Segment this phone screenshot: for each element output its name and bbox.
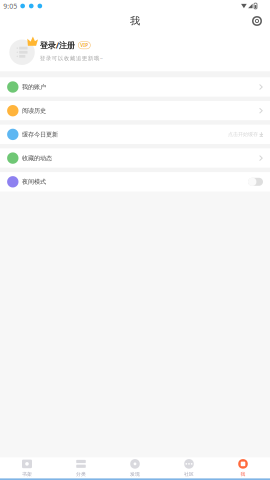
staticText: 登录/注册 bbox=[40, 40, 75, 51]
button[interactable]: 登录/注册 bbox=[0, 30, 270, 71]
staticText: 缓存今日更新 bbox=[22, 130, 58, 138]
staticText: 夜间模式 bbox=[22, 178, 46, 186]
staticText: 我的账户 bbox=[22, 83, 46, 91]
button[interactable]: 夜间模式 bbox=[0, 172, 270, 191]
button[interactable]: 收藏的动态 bbox=[0, 148, 270, 168]
staticText: 9:05 bbox=[3, 1, 17, 11]
staticText: VIP bbox=[80, 42, 88, 48]
staticText: 收藏的动态 bbox=[22, 154, 52, 162]
button[interactable]: 缓存今日更新 bbox=[0, 125, 270, 144]
button[interactable]: 书架 bbox=[0, 457, 54, 478]
staticText: 分类 bbox=[76, 471, 86, 477]
button[interactable]: 社区 bbox=[162, 457, 216, 478]
button[interactable]: Settings bbox=[248, 12, 265, 29]
staticText: 社区 bbox=[184, 471, 194, 477]
staticText: 发现 bbox=[130, 471, 140, 477]
staticText: 登录可以收藏追更新哦~ bbox=[40, 54, 103, 62]
staticText: 点击开始缓存 bbox=[228, 131, 258, 138]
staticText: 我 bbox=[240, 471, 245, 477]
staticText: 书架 bbox=[22, 471, 32, 477]
button[interactable]: 发现 bbox=[108, 457, 162, 478]
button[interactable]: 我的账户 bbox=[0, 77, 270, 97]
staticText: 我 bbox=[130, 15, 140, 27]
button[interactable]: 阅读历史 bbox=[0, 101, 270, 120]
button[interactable]: 我 bbox=[216, 457, 270, 478]
button[interactable]: 分类 bbox=[54, 457, 108, 478]
staticText: 阅读历史 bbox=[22, 107, 46, 114]
